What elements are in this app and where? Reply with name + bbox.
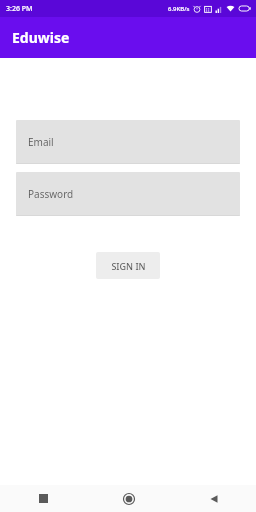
staticText: 3:26 PM bbox=[6, 4, 33, 14]
button[interactable]: Recent apps bbox=[0, 485, 86, 512]
staticText: 6.9KB/s bbox=[168, 5, 190, 13]
button[interactable]: Email bbox=[16, 120, 240, 164]
staticText: SIGN IN bbox=[111, 260, 146, 272]
staticText: Email bbox=[28, 135, 54, 149]
button[interactable]: SIGN IN bbox=[96, 252, 160, 279]
button[interactable]: Home bbox=[86, 485, 171, 512]
staticText: Eduwise bbox=[12, 28, 70, 47]
staticText: Password bbox=[28, 187, 74, 201]
button[interactable]: Password bbox=[16, 172, 240, 216]
button[interactable]: Back bbox=[171, 485, 256, 512]
